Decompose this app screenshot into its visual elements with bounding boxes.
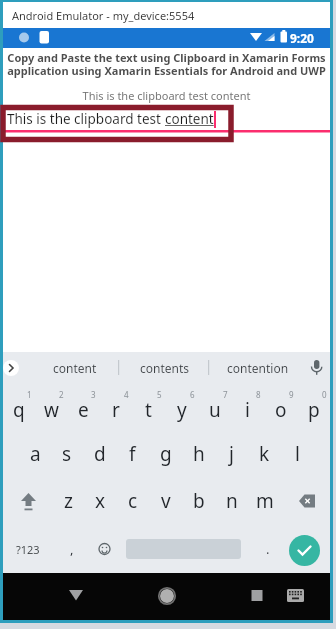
staticText: k bbox=[259, 441, 270, 467]
staticText: n bbox=[226, 488, 238, 514]
button[interactable]: 0 bbox=[297, 383, 330, 430]
staticText: l bbox=[295, 441, 300, 467]
button[interactable]: 3 bbox=[67, 383, 99, 430]
button[interactable]: content bbox=[30, 352, 120, 383]
staticText: s bbox=[62, 441, 72, 467]
staticText: z bbox=[64, 488, 73, 514]
staticText: g bbox=[160, 441, 172, 467]
staticText: Copy and Paste the text using Clipboard … bbox=[3, 50, 330, 78]
button[interactable]: c bbox=[116, 477, 149, 525]
staticText: 6 bbox=[190, 389, 195, 400]
button[interactable]: a bbox=[19, 430, 51, 477]
button[interactable] bbox=[241, 579, 273, 611]
staticText: contents bbox=[140, 360, 190, 376]
button[interactable]: , bbox=[55, 525, 88, 573]
button[interactable]: b bbox=[182, 477, 215, 525]
button[interactable]: This is the clipboard test bbox=[3, 105, 330, 133]
staticText: b bbox=[193, 488, 205, 514]
button[interactable] bbox=[88, 525, 121, 573]
button[interactable]: g bbox=[149, 430, 182, 477]
staticText: 9 bbox=[289, 389, 294, 400]
staticText: h bbox=[193, 441, 205, 467]
staticText: 7 bbox=[223, 389, 228, 400]
button[interactable]: l bbox=[281, 430, 314, 477]
button[interactable]: 9 bbox=[264, 383, 297, 430]
staticText: ?123 bbox=[16, 542, 40, 557]
button[interactable]: 5 bbox=[132, 383, 165, 430]
button[interactable]: 1 bbox=[3, 383, 35, 430]
button[interactable]: h bbox=[182, 430, 215, 477]
button[interactable] bbox=[289, 535, 320, 566]
staticText: 3 bbox=[91, 389, 96, 400]
button[interactable]: contention bbox=[213, 352, 303, 383]
button[interactable]: d bbox=[83, 430, 116, 477]
staticText: This is the clipboard test bbox=[7, 110, 165, 128]
button[interactable]: contents bbox=[120, 352, 210, 383]
staticText: Android Emulator - my_device:5554 bbox=[12, 8, 195, 23]
button[interactable]: 8 bbox=[231, 383, 264, 430]
staticText: r bbox=[112, 397, 120, 423]
staticText: 5 bbox=[157, 389, 162, 400]
staticText: i bbox=[245, 397, 250, 423]
button[interactable] bbox=[281, 477, 330, 525]
staticText: j bbox=[229, 441, 234, 467]
staticText: content bbox=[165, 110, 214, 128]
button[interactable] bbox=[281, 581, 311, 611]
button[interactable]: ?123 bbox=[3, 525, 52, 573]
button[interactable]: z bbox=[52, 477, 84, 525]
button[interactable]: m bbox=[248, 477, 281, 525]
staticText: 1 bbox=[27, 389, 32, 400]
button[interactable]: n bbox=[215, 477, 248, 525]
staticText: y bbox=[177, 397, 187, 423]
staticText: p bbox=[308, 397, 320, 423]
staticText: d bbox=[94, 441, 106, 467]
button[interactable] bbox=[3, 477, 52, 525]
staticText: 4 bbox=[124, 389, 129, 400]
button[interactable]: v bbox=[149, 477, 182, 525]
staticText: a bbox=[30, 441, 41, 467]
button[interactable]: k bbox=[248, 430, 281, 477]
staticText: 0 bbox=[322, 389, 327, 400]
button[interactable]: s bbox=[51, 430, 83, 477]
staticText: c bbox=[128, 488, 138, 514]
staticText: v bbox=[161, 488, 171, 514]
button[interactable]: 2 bbox=[35, 383, 67, 430]
staticText: t bbox=[145, 397, 152, 423]
button[interactable] bbox=[60, 579, 92, 611]
button[interactable] bbox=[3, 360, 19, 376]
staticText: 9:20 bbox=[290, 30, 314, 46]
staticText: , bbox=[70, 540, 74, 558]
button[interactable]: x bbox=[84, 477, 116, 525]
staticText: o bbox=[275, 397, 287, 423]
staticText: f bbox=[129, 441, 136, 467]
button[interactable] bbox=[151, 579, 183, 611]
staticText: 8 bbox=[256, 389, 261, 400]
button[interactable]: f bbox=[116, 430, 149, 477]
staticText: e bbox=[78, 397, 89, 423]
button[interactable]: j bbox=[215, 430, 248, 477]
staticText: . bbox=[266, 540, 270, 558]
staticText: m bbox=[256, 488, 274, 514]
staticText: content bbox=[53, 360, 97, 376]
staticText: q bbox=[13, 397, 25, 423]
button[interactable]: 6 bbox=[165, 383, 198, 430]
staticText: x bbox=[95, 488, 106, 514]
button[interactable]: 4 bbox=[99, 383, 132, 430]
staticText: This is the clipboard test content bbox=[3, 88, 330, 103]
button[interactable]: . bbox=[251, 525, 284, 573]
staticText: contention bbox=[227, 360, 289, 376]
staticText: 2 bbox=[59, 389, 64, 400]
button[interactable]: 7 bbox=[198, 383, 231, 430]
staticText: u bbox=[209, 397, 221, 423]
staticText: w bbox=[44, 397, 59, 423]
